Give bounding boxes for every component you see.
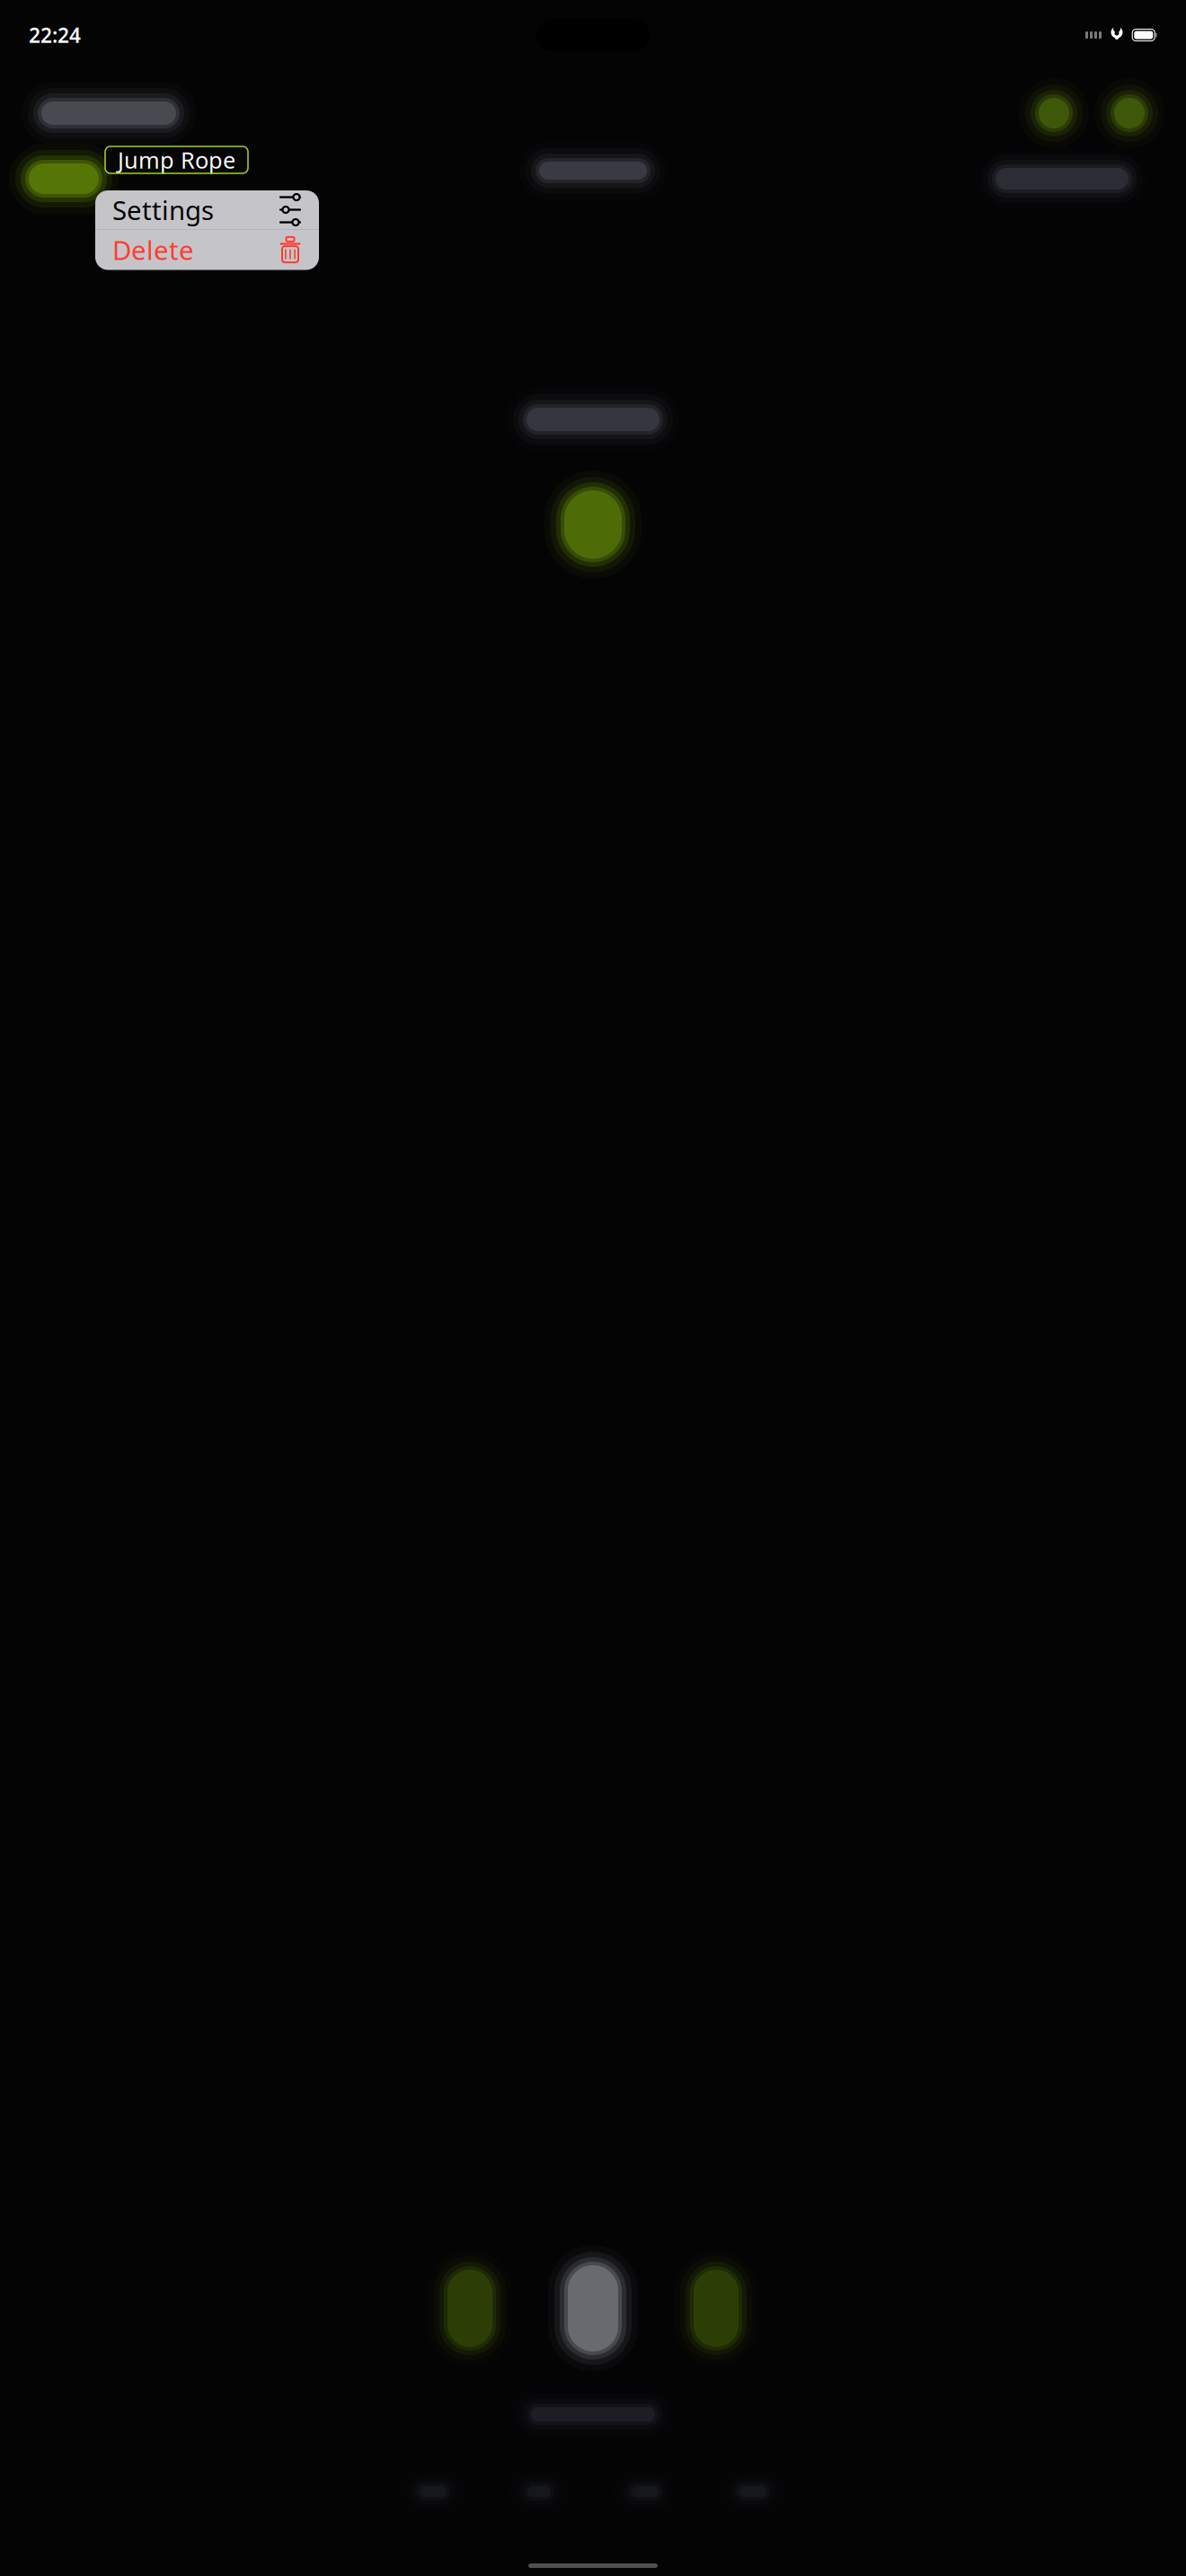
button[interactable]: Jump Rope — [105, 146, 248, 173]
button[interactable]: Settings — [95, 190, 319, 229]
staticText: 22:24 — [29, 21, 81, 49]
staticText: Settings — [112, 192, 214, 227]
button[interactable]: Delete — [95, 229, 319, 270]
staticText: Delete — [112, 232, 194, 267]
staticText: Jump Rope — [118, 145, 235, 175]
